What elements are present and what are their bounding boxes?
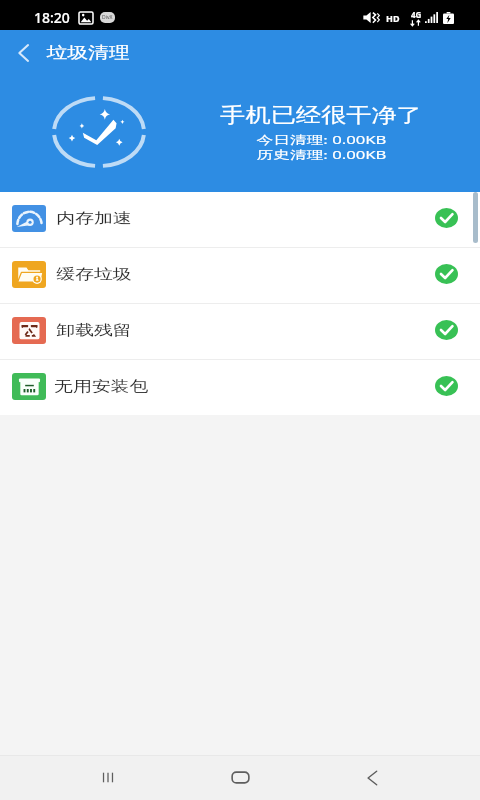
staticText: 4G bbox=[411, 9, 422, 20]
button[interactable]: 缓存垃圾 bbox=[0, 248, 480, 303]
staticText: 内存加速 bbox=[56, 209, 132, 227]
button[interactable]: Home bbox=[216, 755, 264, 800]
button[interactable]: Back bbox=[348, 755, 396, 800]
staticText: 垃圾清理 bbox=[46, 43, 130, 63]
button[interactable]: Recent apps bbox=[84, 755, 132, 800]
button[interactable]: 内存加速 bbox=[0, 192, 480, 247]
staticText: 手机已经很干净了 bbox=[220, 103, 422, 128]
staticText: 今日清理: 0.00KB 历史清理: 0.00KB bbox=[256, 132, 387, 162]
staticText: 卸载残留 bbox=[56, 321, 132, 339]
button[interactable]: Back bbox=[0, 30, 47, 75]
button[interactable]: 卸载残留 bbox=[0, 304, 480, 359]
staticText: 无用安装包 bbox=[54, 377, 149, 395]
staticText: DivX bbox=[102, 14, 113, 21]
staticText: HD bbox=[386, 12, 400, 24]
button[interactable]: 无用安装包 bbox=[0, 360, 480, 415]
staticText: 18:20 bbox=[34, 8, 70, 27]
staticText: 缓存垃圾 bbox=[56, 265, 132, 283]
